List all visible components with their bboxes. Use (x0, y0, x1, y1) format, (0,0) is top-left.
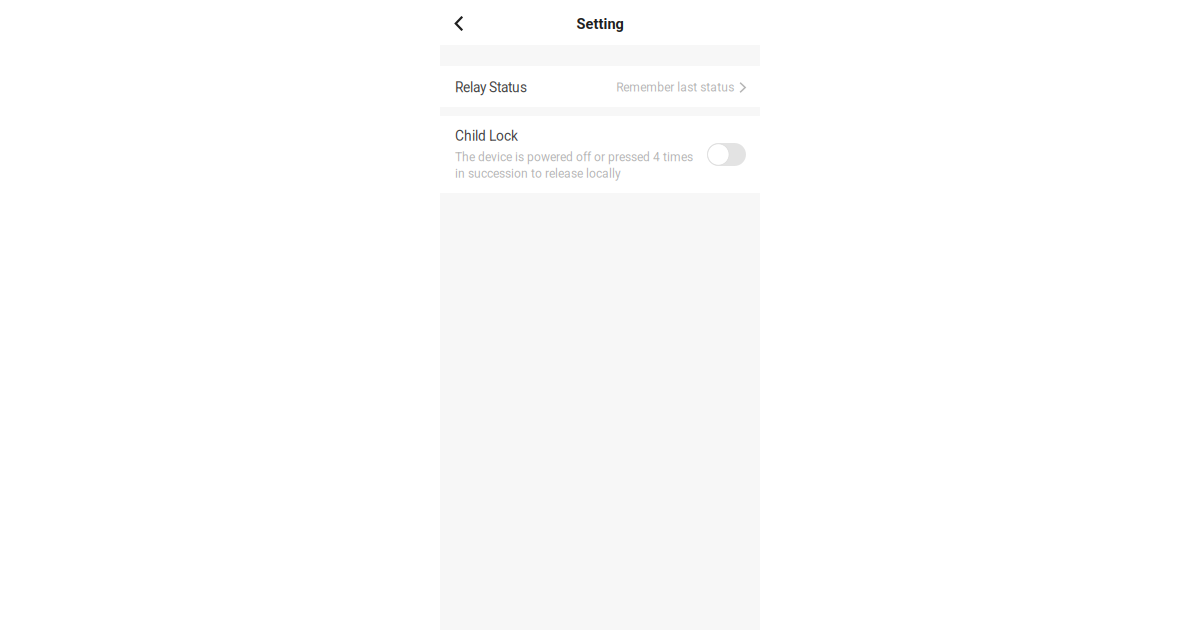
staticText: in succession to release locally (455, 167, 621, 181)
staticText: Child Lock (455, 128, 518, 144)
button[interactable]: Relay Status (440, 66, 760, 107)
button[interactable]: Back (441, 0, 477, 44)
button[interactable]: Child Lock (707, 116, 746, 166)
staticText: The device is powered off or pressed 4 t… (455, 150, 693, 164)
staticText: Setting (576, 15, 623, 32)
staticText: Remember last status (616, 80, 734, 94)
staticText: Relay Status (455, 79, 527, 96)
